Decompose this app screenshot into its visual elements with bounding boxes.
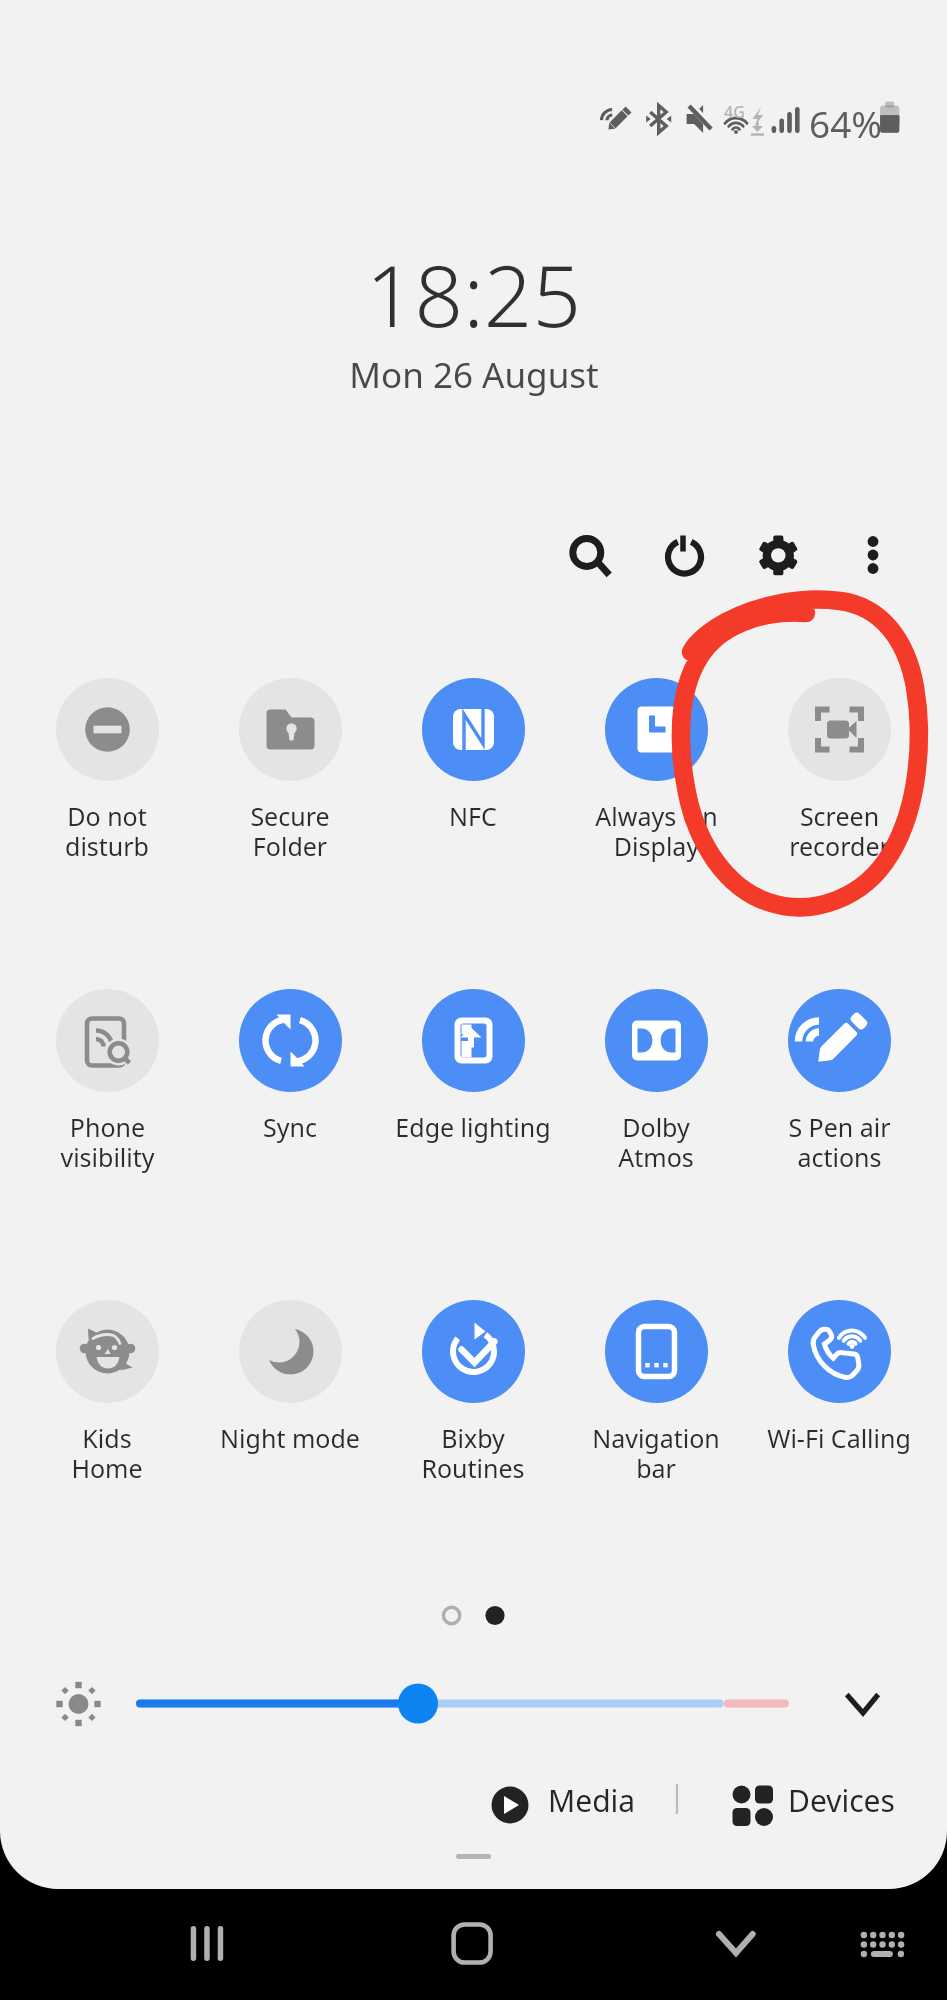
staticText: Edge lighting (395, 1110, 551, 1144)
button[interactable]: Expand (828, 1668, 898, 1738)
button[interactable]: Night mode (199, 1300, 381, 1455)
staticText: Night mode (220, 1421, 360, 1455)
staticText: Secure Folder (250, 799, 330, 863)
button[interactable]: Home (425, 1896, 519, 1990)
button[interactable]: Dolby Atmos (565, 989, 747, 1174)
button[interactable]: Do not disturb (16, 678, 198, 863)
button[interactable]: S Pen air actions (748, 989, 930, 1174)
button[interactable]: Recents (160, 1896, 254, 1990)
button[interactable]: Search (554, 519, 626, 591)
button[interactable]: Navigation bar (565, 1300, 747, 1485)
button[interactable]: Devices (728, 1775, 895, 1825)
staticText: Mon 26 August (349, 351, 599, 399)
button[interactable]: Sync (199, 989, 381, 1144)
staticText: Sync (263, 1110, 317, 1144)
button[interactable]: Screen recorder (748, 678, 930, 863)
staticText: NFC (449, 799, 497, 833)
button[interactable]: Back (689, 1896, 783, 1990)
staticText: Always On Display (595, 799, 718, 863)
button[interactable]: Kids Home (16, 1300, 198, 1485)
staticText: Bixby Routines (421, 1421, 525, 1485)
button[interactable]: Wi-Fi Calling (748, 1300, 930, 1455)
staticText: Do not disturb (65, 799, 149, 863)
button[interactable]: Always On Display (565, 678, 747, 863)
button[interactable]: Phone visibility (16, 989, 198, 1174)
staticText: Devices (788, 1780, 895, 1821)
staticText: 18:25 (366, 236, 581, 352)
staticText: 64% (809, 98, 883, 148)
button[interactable]: Keyboard (836, 1896, 930, 1990)
button[interactable]: Bixby Routines (382, 1300, 564, 1485)
staticText: 4G (724, 101, 745, 123)
button[interactable]: Media (490, 1775, 636, 1825)
staticText: Phone visibility (60, 1110, 155, 1174)
button[interactable]: Brightness (40, 1664, 120, 1744)
button[interactable]: Power off (647, 519, 719, 591)
button[interactable]: NFC (382, 678, 564, 833)
button[interactable]: More options (837, 519, 909, 591)
button[interactable]: Settings (742, 519, 814, 591)
staticText: Screen recorder (789, 799, 890, 863)
button[interactable]: Edge lighting (382, 989, 564, 1144)
staticText: Wi-Fi Calling (767, 1421, 911, 1455)
staticText: Dolby Atmos (618, 1110, 694, 1174)
staticText: Navigation bar (592, 1421, 720, 1485)
staticText: S Pen air actions (788, 1110, 891, 1174)
button[interactable]: Secure Folder (199, 678, 381, 863)
staticText: Kids Home (71, 1421, 143, 1485)
staticText: Media (548, 1780, 636, 1821)
